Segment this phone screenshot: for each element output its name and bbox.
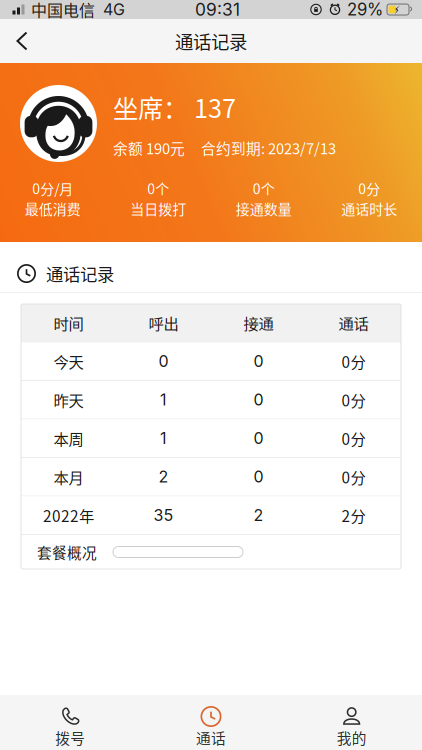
staticText: 通话 — [196, 727, 226, 748]
staticText: 4G — [103, 0, 125, 19]
staticText: 接通数量 — [236, 198, 292, 219]
staticText: 我的 — [337, 727, 367, 748]
staticText: 0 — [253, 467, 263, 486]
button[interactable]: Back — [0, 19, 46, 63]
staticText: 1 — [160, 390, 167, 409]
staticText: 0分 — [358, 178, 380, 198]
staticText: 通话 — [338, 312, 368, 334]
staticText: 中国电信 — [31, 0, 95, 21]
staticText: 坐席： 137 — [113, 88, 236, 125]
staticText: 时间 — [53, 312, 83, 334]
staticText: 2022年 — [43, 504, 94, 526]
staticText: 今天 — [53, 350, 83, 372]
staticText: 2 — [253, 506, 263, 525]
staticText: 1 — [160, 429, 167, 448]
staticText: 0 — [253, 429, 263, 448]
staticText: 0 — [253, 390, 263, 409]
staticText: 本周 — [53, 427, 83, 449]
staticText: 09:31 — [195, 0, 240, 20]
staticText: 通话记录 — [46, 261, 114, 286]
staticText: 29% — [347, 0, 383, 20]
staticText: 0分 — [341, 466, 365, 488]
staticText: 2分 — [341, 504, 365, 526]
staticText: 通话时长 — [341, 198, 397, 219]
staticText: 0分/月 — [32, 178, 73, 198]
staticText: 0分 — [341, 427, 365, 449]
staticText: 合约到期: 2023/7/13 — [201, 137, 336, 158]
staticText: 接通 — [243, 312, 273, 334]
staticText: 通话记录 — [175, 28, 247, 54]
staticText: 2 — [158, 467, 168, 486]
staticText: 0个 — [147, 178, 169, 198]
staticText: 拨号 — [55, 727, 85, 748]
staticText: 套餐概况 — [37, 541, 97, 563]
staticText: 当日拨打 — [130, 198, 186, 219]
staticText: 0分 — [341, 350, 365, 372]
button[interactable]: 通话 — [141, 695, 281, 750]
staticText: 余额 190元 — [113, 137, 185, 158]
staticText: 0 — [158, 352, 168, 371]
staticText: 本月 — [53, 466, 83, 488]
staticText: 昨天 — [53, 389, 83, 411]
button[interactable]: 我的 — [281, 695, 422, 750]
staticText: 最低消费 — [25, 198, 81, 219]
staticText: 0 — [253, 352, 263, 371]
staticText: 0分 — [341, 389, 365, 411]
staticText: 0个 — [253, 178, 275, 198]
staticText: 35 — [153, 506, 173, 525]
staticText: 呼出 — [148, 312, 178, 334]
button[interactable]: 拨号 — [0, 695, 141, 750]
